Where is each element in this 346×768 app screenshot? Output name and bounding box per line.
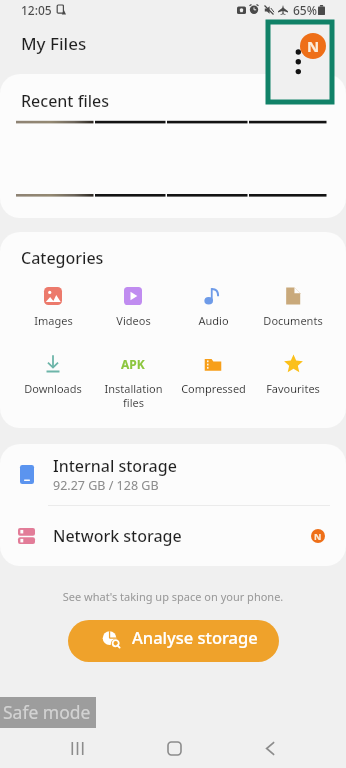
staticText: My Files [21, 32, 87, 55]
staticText: Analyse storage [132, 626, 258, 648]
button[interactable]: Home [151, 728, 197, 768]
button[interactable]: Internal storage [0, 444, 346, 505]
button[interactable]: Recent apps [54, 728, 100, 768]
button[interactable]: Network storage [0, 506, 346, 566]
staticText: Videos [116, 313, 151, 328]
button[interactable]: Analyse storage [68, 620, 279, 662]
staticText: Categories [21, 247, 104, 269]
staticText: Recent files [21, 90, 109, 112]
staticText: Internal storage [53, 455, 177, 477]
button[interactable]: More options [268, 22, 332, 102]
button[interactable]: Compressed [173, 354, 253, 396]
staticText: Compressed [181, 381, 246, 396]
button[interactable]: Documents [253, 286, 333, 328]
button[interactable]: Back [247, 728, 293, 768]
staticText: Safe mode [3, 700, 91, 724]
button[interactable]: Audio [173, 286, 253, 328]
staticText: Downloads [24, 381, 82, 396]
staticText: Installation files [104, 381, 163, 410]
staticText: N [307, 36, 320, 56]
staticText: Images [34, 313, 73, 328]
staticText: N [314, 530, 322, 542]
staticText: 65% [293, 2, 317, 18]
staticText: 12:05 [21, 2, 52, 18]
button[interactable]: Downloads [13, 354, 93, 396]
button[interactable]: Videos [93, 286, 173, 328]
button[interactable]: Images [13, 286, 93, 328]
staticText: See what's taking up space on your phone… [0, 589, 346, 604]
staticText: Documents [263, 313, 323, 328]
staticText: Favourites [266, 381, 320, 396]
staticText: APK [121, 356, 145, 372]
staticText: 92.27 GB / 128 GB [53, 477, 159, 494]
staticText: Network storage [53, 525, 182, 547]
button[interactable]: Favourites [253, 354, 333, 396]
staticText: Audio [198, 313, 229, 328]
button[interactable]: APK [93, 354, 173, 410]
